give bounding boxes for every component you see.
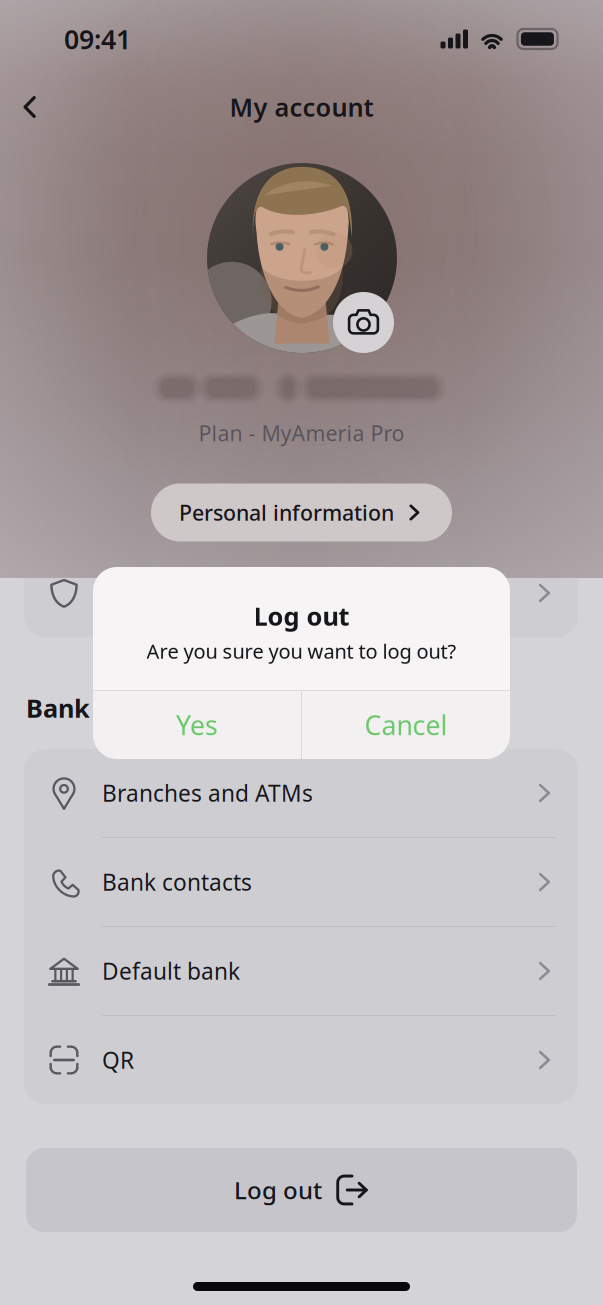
button[interactable]: QR <box>24 1016 578 1104</box>
staticText: Plan - MyAmeria Pro <box>198 419 404 447</box>
staticText: 09:41 <box>64 21 131 57</box>
staticText: Log out <box>253 599 349 633</box>
button[interactable]: Bank contacts <box>24 838 578 926</box>
button[interactable]: Default bank <box>24 927 578 1015</box>
staticText: Bank <box>26 691 90 725</box>
button[interactable]: Log out <box>26 1148 577 1232</box>
button[interactable]: Yes <box>93 691 301 759</box>
staticText: Personal information <box>179 498 394 527</box>
button[interactable]: Back <box>4 81 56 133</box>
staticText: Default bank <box>102 956 240 986</box>
staticText: Branches and ATMs <box>102 778 313 808</box>
staticText: Yes <box>176 707 218 743</box>
staticText: QR <box>102 1045 134 1075</box>
staticText: Are you sure you want to log out? <box>146 638 456 664</box>
button[interactable]: Change profile photo <box>333 292 394 353</box>
button[interactable]: Cancel <box>302 691 510 759</box>
staticText: Log out <box>234 1174 322 1206</box>
button[interactable]: Personal information <box>151 483 452 541</box>
staticText: My account <box>229 90 373 124</box>
button[interactable] <box>24 549 578 637</box>
button[interactable]: Branches and ATMs <box>24 749 578 837</box>
staticText: Cancel <box>364 707 447 743</box>
staticText: Bank contacts <box>102 867 252 897</box>
